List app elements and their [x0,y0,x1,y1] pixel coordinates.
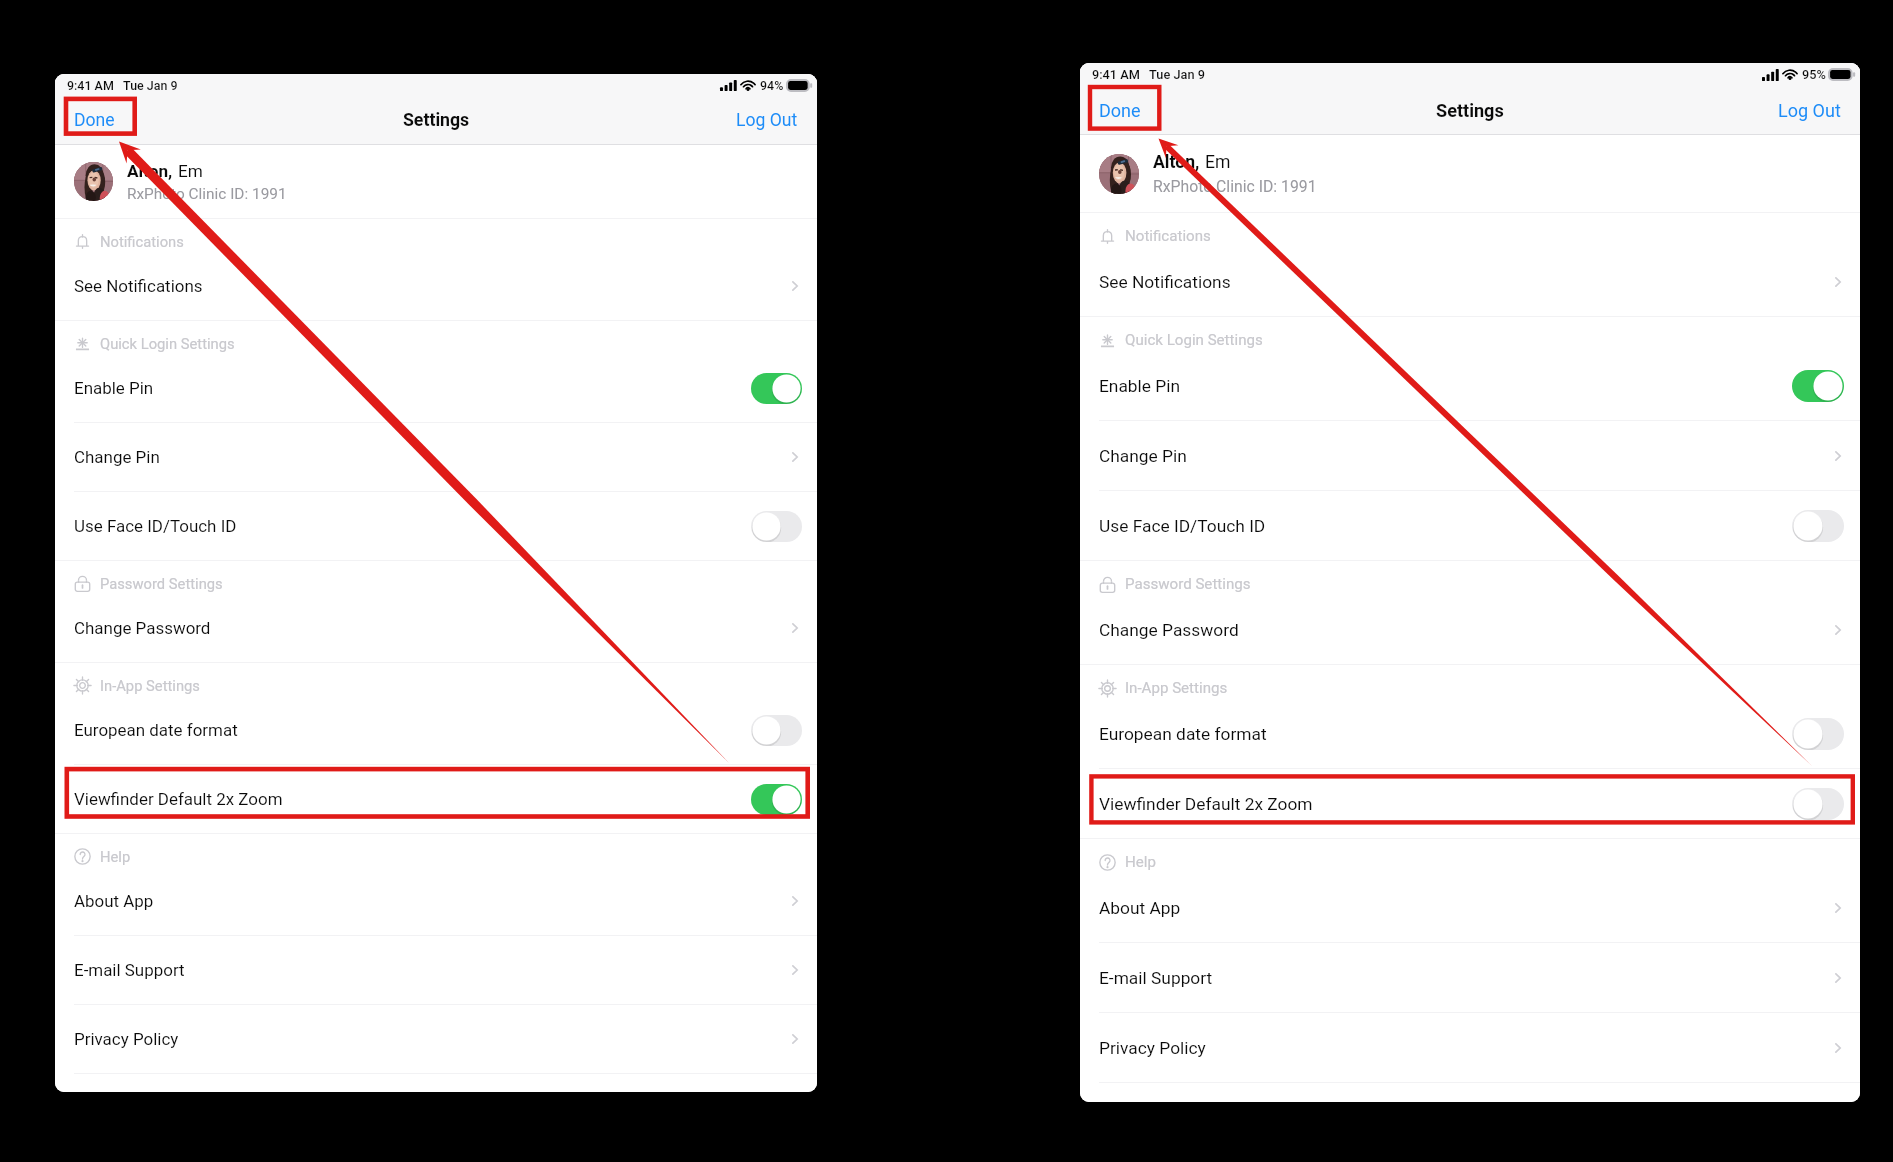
staticText: Enable Pin [1099,376,1181,396]
staticText: Notifications [1125,227,1211,245]
staticText: Help [1125,853,1156,871]
staticText: E-mail Support [74,960,185,980]
button[interactable]: See Notifications [1080,247,1860,316]
button[interactable]: Alton, [1080,135,1860,212]
staticText: Settings [403,110,470,131]
staticText: Alton, [127,161,173,181]
button[interactable]: Enable Pin [1080,351,1860,420]
staticText: Change Password [1099,620,1239,640]
staticText: See Notifications [74,276,203,296]
staticText: 9:41 AM [1092,67,1140,82]
button[interactable]: Log Out [736,110,798,131]
staticText: Viewfinder Default 2x Zoom [74,789,283,809]
staticText: Password Settings [100,575,223,592]
staticText: RxPhoto Clinic ID: 1991 [1153,177,1317,195]
button[interactable]: Switch off [751,715,802,746]
button[interactable]: Switch off [1792,788,1844,820]
staticText: European date format [74,720,238,740]
button[interactable]: Privacy Policy [1080,1013,1860,1082]
button[interactable]: Log Out [1778,100,1841,121]
button[interactable]: About App [1080,873,1860,942]
staticText: Tue Jan 9 [1149,67,1205,82]
button[interactable]: E-mail Support [55,936,817,1004]
staticText: Help [100,848,131,865]
staticText: Privacy Policy [1099,1038,1206,1058]
button[interactable]: Switch off [751,511,802,542]
button[interactable]: Switch on [751,784,802,815]
button[interactable]: Switch on [1792,370,1844,402]
staticText: 9:41 AM [67,78,114,93]
button[interactable]: E-mail Support [1080,943,1860,1012]
staticText: RxPhoto Clinic ID: 1991 [127,185,287,203]
staticText: Log Out [736,110,798,131]
staticText: Quick Login Settings [100,335,235,352]
staticText: E-mail Support [1099,968,1213,988]
staticText: Use Face ID/Touch ID [1099,516,1266,536]
staticText: Em [1205,152,1231,173]
staticText: In-App Settings [100,677,200,694]
staticText: Notifications [100,233,184,250]
staticText: Done [1099,100,1141,121]
staticText: Change Pin [74,447,160,467]
staticText: About App [74,891,154,911]
staticText: Done [74,110,115,131]
button[interactable]: European date format [1080,699,1860,768]
staticText: Alton, [1153,152,1200,173]
staticText: Enable Pin [74,378,154,398]
button[interactable]: See Notifications [55,252,817,320]
button[interactable]: Done [74,110,115,131]
staticText: Em [178,161,203,181]
staticText: European date format [1099,724,1267,744]
button[interactable]: Switch off [1792,510,1844,542]
staticText: In-App Settings [1125,679,1228,697]
staticText: Viewfinder Default 2x Zoom [1099,794,1313,814]
button[interactable]: European date format [55,696,817,764]
staticText: Change Password [74,618,211,638]
button[interactable]: Change Password [1080,595,1860,664]
staticText: Password Settings [1125,575,1251,593]
staticText: Use Face ID/Touch ID [74,516,237,536]
button[interactable]: Switch on [751,373,802,404]
staticText: Change Pin [1099,446,1187,466]
button[interactable]: Done [1099,100,1141,121]
button[interactable]: Use Face ID/Touch ID [1080,491,1860,560]
button[interactable]: Viewfinder Default 2x Zoom [1080,769,1860,838]
staticText: Privacy Policy [74,1029,179,1049]
staticText: Tue Jan 9 [123,78,178,93]
button[interactable]: Use Face ID/Touch ID [55,492,817,560]
button[interactable]: Privacy Policy [55,1005,817,1073]
button[interactable]: Alton, [55,145,817,218]
button[interactable]: Change Pin [1080,421,1860,490]
staticText: Quick Login Settings [1125,331,1263,349]
staticText: Settings [1436,100,1504,121]
staticText: About App [1099,898,1181,918]
button[interactable]: Change Password [55,594,817,662]
button[interactable]: Change Pin [55,423,817,491]
button[interactable]: Viewfinder Default 2x Zoom [55,765,817,833]
button[interactable]: Enable Pin [55,354,817,422]
staticText: See Notifications [1099,272,1231,292]
staticText: 95% [1802,67,1826,82]
staticText: 94% [760,78,784,93]
button[interactable]: Switch off [1792,718,1844,750]
button[interactable]: About App [55,867,817,935]
staticText: Log Out [1778,100,1841,121]
